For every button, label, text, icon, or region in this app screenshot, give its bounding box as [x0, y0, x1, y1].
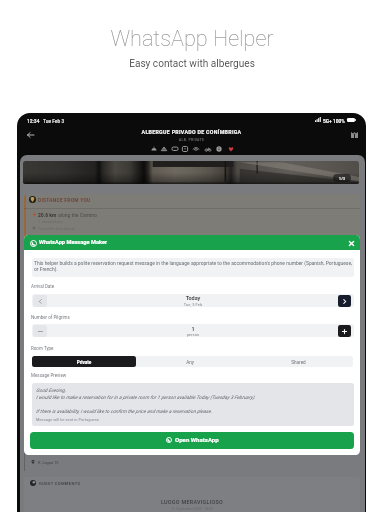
staticText: GUEST COMMENTS	[39, 481, 81, 486]
button[interactable]: Guide	[347, 128, 361, 142]
staticText: 5G+	[323, 118, 332, 124]
staticText: 100%	[333, 118, 345, 124]
staticText: DISTANCE FROM YOU	[38, 197, 91, 203]
staticText: ALBERGUE PRIVADO DE CONÍMBRIGA	[17, 129, 366, 135]
staticText: Tue, 3 Feb	[32, 302, 354, 307]
staticText: Shared	[244, 360, 353, 365]
button[interactable]	[244, 356, 353, 367]
staticText: ↑ ahead of you	[38, 220, 63, 224]
button[interactable]	[136, 356, 244, 367]
staticText: Good Evening,	[36, 388, 66, 394]
staticText: 1/3	[333, 176, 351, 181]
staticText: Room Type	[31, 346, 54, 351]
staticText: person	[32, 332, 354, 337]
staticText: LUOGO MERAVIGLIOSO	[24, 499, 360, 505]
staticText: I would like to make a reservation for i…	[36, 395, 256, 401]
staticText: Private	[32, 360, 136, 365]
staticText: R. Lagoa 15	[38, 460, 59, 465]
staticText: Message will be sent in Portuguese	[36, 417, 99, 422]
button[interactable]: Back	[21, 128, 39, 142]
staticText: Tue Feb 3	[43, 118, 65, 124]
button[interactable]	[32, 356, 136, 367]
button[interactable]	[30, 432, 354, 449]
staticText: This helper builds a polite reservation …	[34, 260, 352, 272]
staticText: WhatsApp Helper	[0, 26, 384, 51]
button[interactable]: Add pilgrim	[338, 325, 351, 337]
staticText: Number of Pilgrims	[31, 315, 70, 320]
staticText: Today	[32, 295, 354, 301]
staticText: Easy contact with albergues	[0, 58, 384, 70]
staticText: Message Preview	[31, 373, 67, 378]
staticText: 12:34	[27, 118, 40, 124]
button[interactable]: Next day	[338, 295, 351, 307]
staticText: along the Camino	[58, 212, 97, 218]
button[interactable]: Previous day	[33, 295, 47, 307]
staticText: Open WhatsApp	[175, 436, 219, 443]
staticText: 1	[32, 326, 354, 332]
button[interactable]: Close	[345, 237, 357, 249]
staticText: 20.6 km	[38, 212, 57, 218]
staticText: If there is availability, I would like t…	[36, 409, 212, 415]
button[interactable]: Remove pilgrim	[33, 325, 47, 337]
staticText: WhatsApp Message Maker	[39, 239, 108, 246]
staticText: You are 0m from the trail	[38, 227, 75, 231]
staticText: Any	[136, 360, 244, 365]
staticText: Arrival Date	[31, 284, 55, 289]
staticText: ALB. PRIVATE	[17, 138, 366, 142]
